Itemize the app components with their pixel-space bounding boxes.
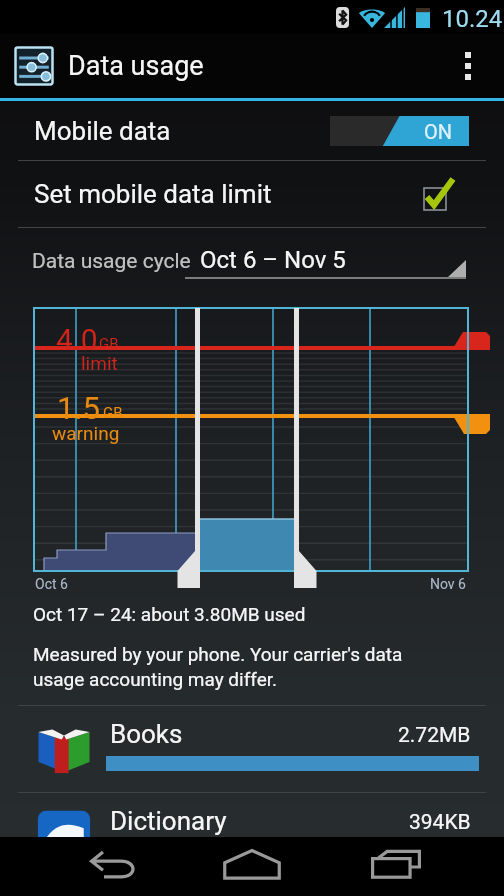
staticText: warning <box>52 422 120 444</box>
button[interactable]: Data usage cycle <box>0 228 504 292</box>
staticText: 10.24 <box>442 5 503 33</box>
staticText: Nov 6 <box>430 576 466 592</box>
staticText: GB <box>99 335 119 353</box>
staticText: GB <box>103 404 123 422</box>
staticText: 1.5 <box>57 390 101 426</box>
staticText: limit <box>81 352 118 374</box>
staticText: Data usage cycle <box>32 249 191 274</box>
staticText: Books <box>110 719 183 749</box>
button[interactable]: Set mobile data limit <box>0 161 504 227</box>
button[interactable]: Dictionary <box>0 793 504 879</box>
button[interactable]: Books <box>0 706 504 792</box>
staticText: 2.72MB <box>398 723 471 748</box>
staticText: Mobile data <box>34 116 171 146</box>
staticText: Oct 6 – Nov 5 <box>200 246 346 274</box>
staticText: Set mobile data limit <box>34 179 272 209</box>
staticText: Measured by your phone. Your carrier's d… <box>33 643 403 690</box>
button[interactable]: Mobile data <box>0 102 504 159</box>
staticText: Oct 6 <box>35 576 68 592</box>
button[interactable]: Data usage <box>0 34 504 98</box>
button[interactable]: Back <box>52 834 178 893</box>
button[interactable]: Home <box>189 834 315 893</box>
staticText: 394KB <box>409 810 471 835</box>
staticText: 4.0 <box>56 322 98 357</box>
staticText: ON <box>424 120 453 143</box>
staticText: Data usage <box>68 50 204 82</box>
button[interactable]: More options <box>446 34 490 98</box>
staticText: Dictionary <box>110 806 227 836</box>
button[interactable]: Recent apps <box>333 834 459 893</box>
staticText: Oct 17 – 24: about 3.80MB used <box>33 603 306 625</box>
